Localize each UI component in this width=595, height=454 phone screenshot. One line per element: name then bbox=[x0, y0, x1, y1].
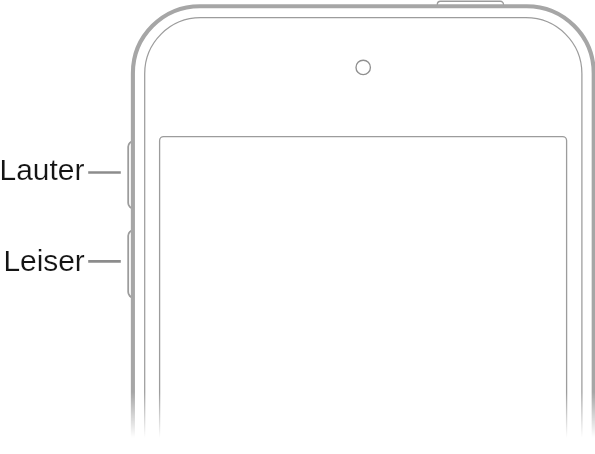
other: Diagram of the top of a phone: the upper… bbox=[0, 0, 595, 454]
